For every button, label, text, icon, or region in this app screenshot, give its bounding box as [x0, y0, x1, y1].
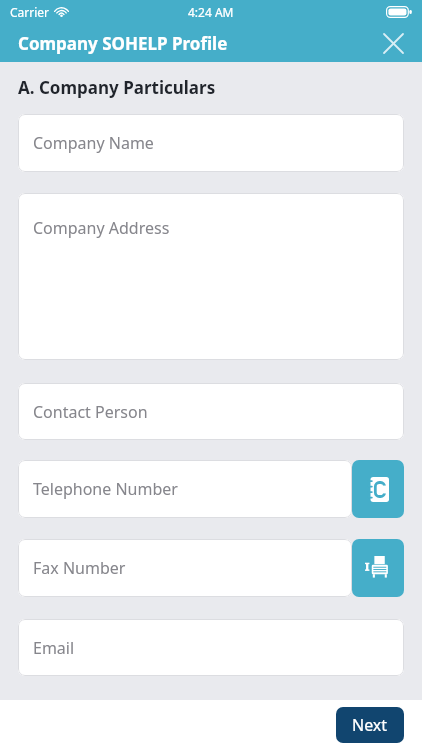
button[interactable]: Company Name: [18, 114, 404, 172]
button[interactable]: Email: [18, 619, 404, 676]
button[interactable]: Fax Number: [352, 539, 404, 597]
button[interactable]: Telephone Number: [352, 460, 404, 518]
staticText: Fax Number: [33, 557, 126, 579]
staticText: Contact Person: [33, 401, 148, 423]
staticText: Carrier: [10, 4, 50, 20]
staticText: Company SOHELP Profile: [18, 32, 228, 55]
staticText: A. Company Particulars: [18, 76, 216, 99]
button[interactable]: Telephone Number: [18, 460, 352, 518]
staticText: Telephone Number: [33, 478, 178, 500]
button[interactable]: Next: [336, 707, 404, 743]
button[interactable]: Contact Person: [18, 383, 404, 440]
staticText: Company Address: [33, 217, 170, 239]
staticText: Company Name: [33, 132, 154, 154]
button[interactable]: Close: [376, 26, 410, 60]
staticText: 4:24 AM: [188, 4, 234, 20]
button[interactable]: Fax Number: [18, 539, 352, 597]
button[interactable]: Company Address: [18, 193, 404, 360]
staticText: Next: [352, 714, 388, 736]
staticText: Email: [33, 637, 75, 659]
